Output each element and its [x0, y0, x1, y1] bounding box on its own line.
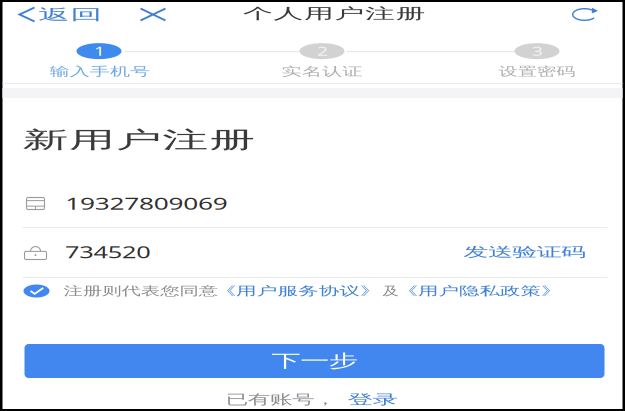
button[interactable]: 《用户服务协议》 — [227, 284, 368, 298]
button[interactable]: Agree to the terms — [23, 284, 49, 297]
staticText: 3 — [532, 43, 539, 59]
button[interactable]: 发送验证码 — [463, 243, 585, 261]
button[interactable]: 下一步 — [24, 344, 604, 378]
button[interactable]: 返回 — [14, 0, 98, 31]
staticText: 登录 — [347, 391, 373, 408]
staticText: 《用户服务协议》 — [215, 284, 311, 298]
staticText: 实名认证 — [281, 64, 329, 79]
staticText: 及 — [382, 284, 394, 298]
staticText: 注册则代表您同意 — [63, 284, 159, 298]
staticText: 个人用户注册 — [243, 4, 333, 22]
staticText: 下一步 — [271, 350, 322, 372]
staticText: 1 — [94, 43, 101, 59]
staticText: 返回 — [38, 5, 68, 23]
staticText: 《用户隐私政策》 — [398, 284, 494, 298]
staticText: 734520 — [65, 241, 119, 263]
staticText: 新用户注册 — [22, 126, 137, 154]
button[interactable]: 《用户隐私政策》 — [409, 284, 549, 298]
staticText: 已有账号， — [226, 391, 291, 408]
button[interactable]: Refresh — [562, 0, 610, 31]
button[interactable]: 登录 — [347, 391, 397, 408]
staticText: 发送验证码 — [463, 244, 528, 260]
staticText: 设置密码 — [498, 64, 546, 79]
button[interactable]: Close — [98, 0, 181, 31]
staticText: 19327809069 — [65, 193, 164, 214]
staticText: 2 — [317, 43, 324, 59]
staticText: 输入手机号 — [49, 64, 109, 79]
